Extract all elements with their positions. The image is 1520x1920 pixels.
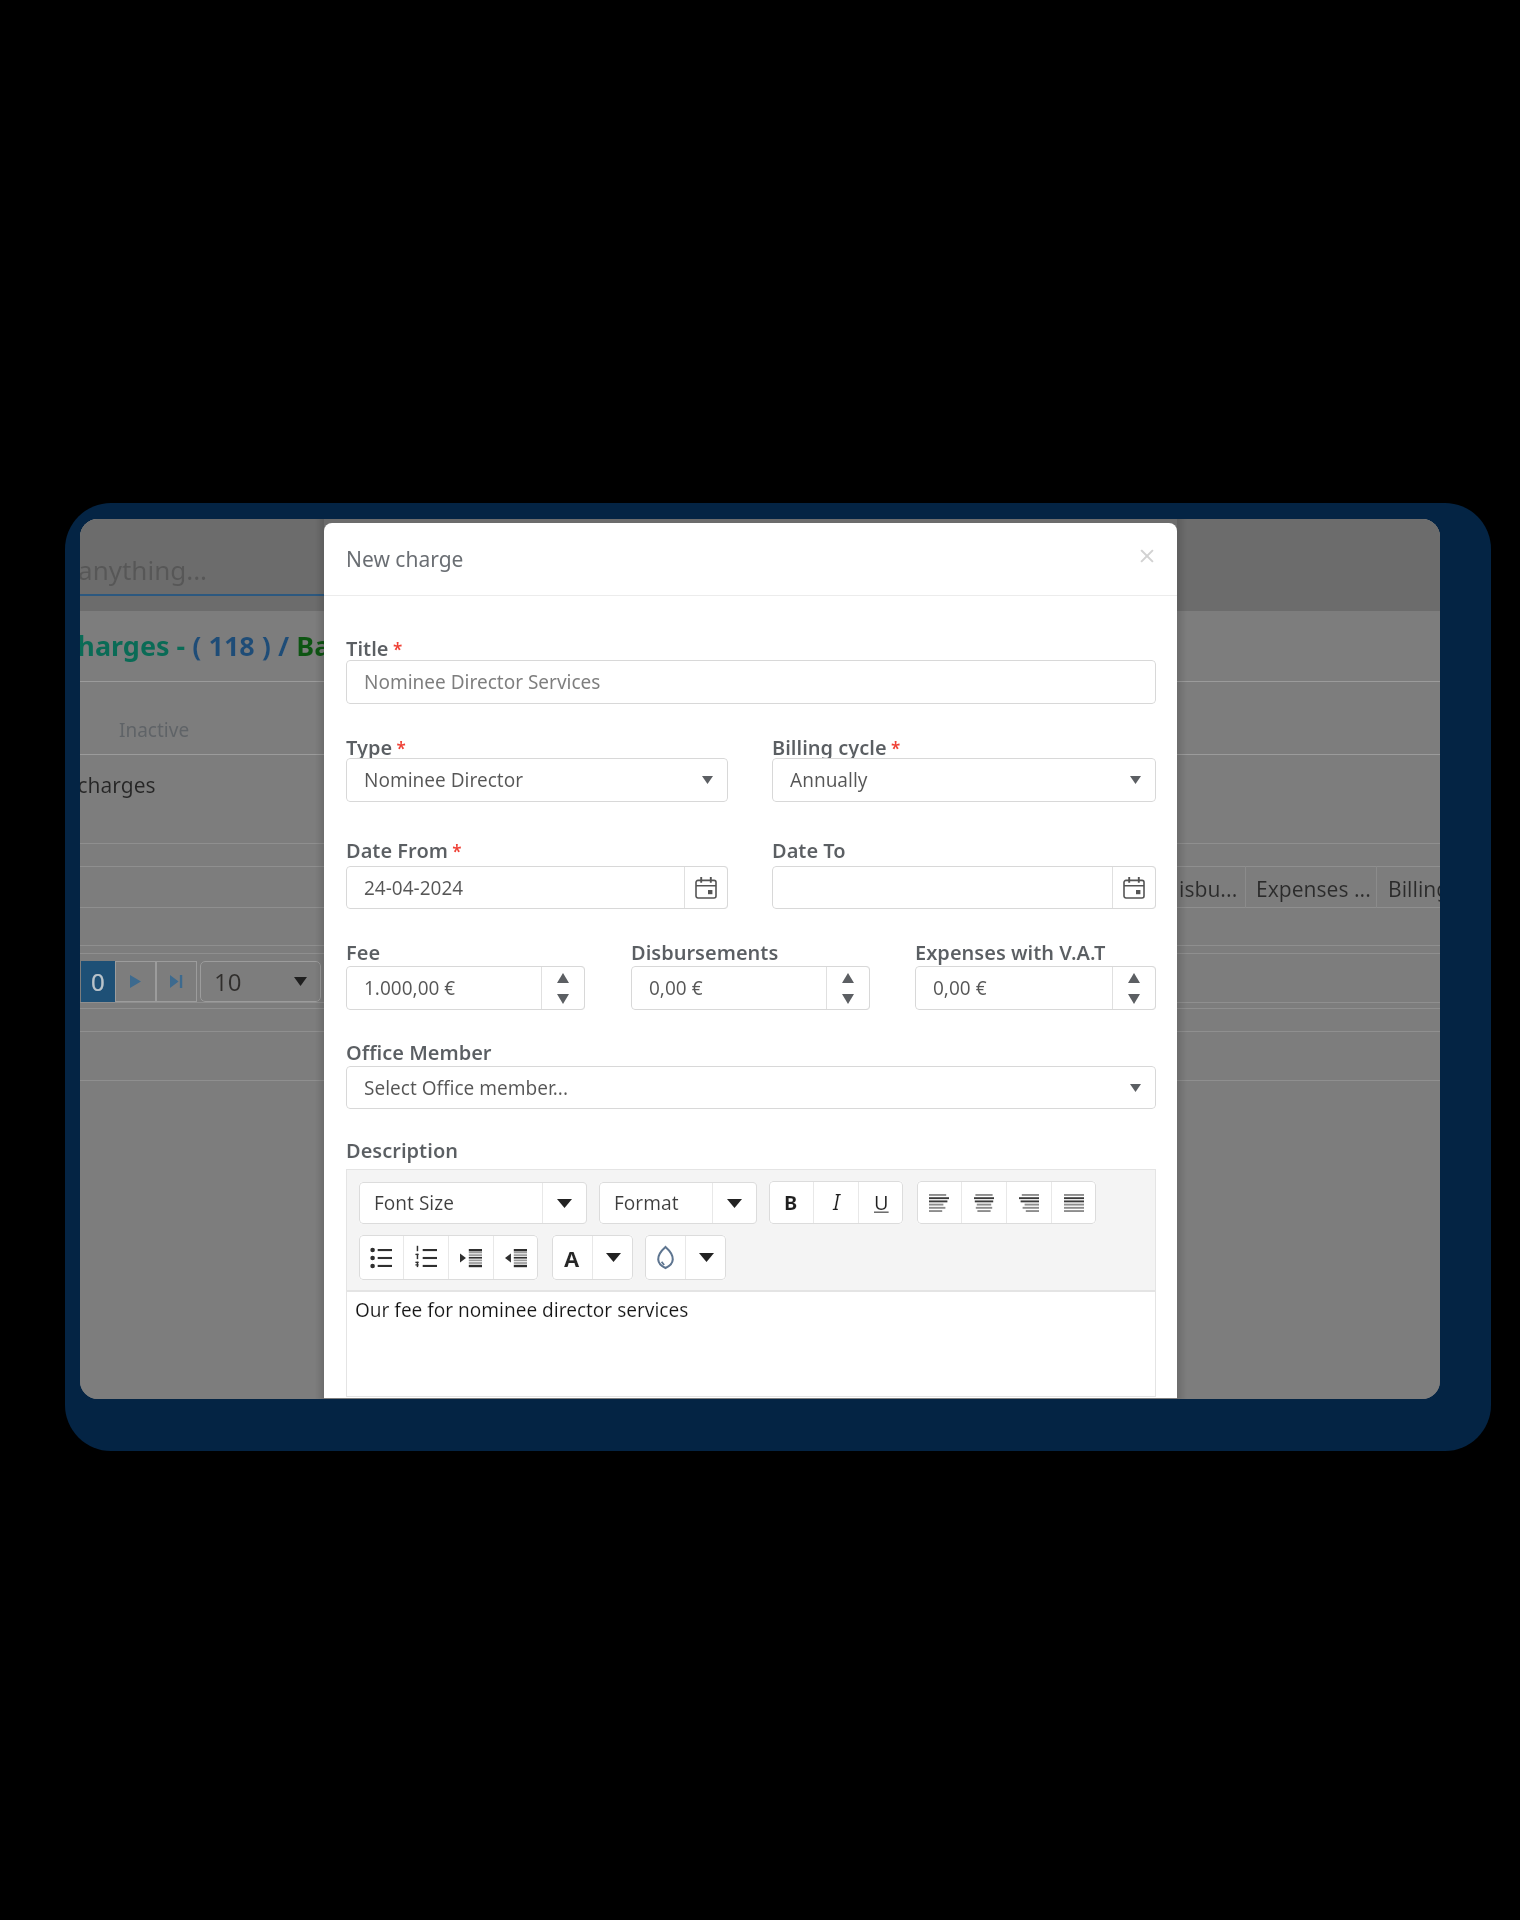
staticText: Inactive — [119, 717, 190, 743]
staticText: 24-04-2024 — [364, 875, 464, 901]
staticText: A — [564, 1243, 580, 1273]
button[interactable]: Align left — [917, 1181, 961, 1224]
button[interactable]: Decrease indent — [494, 1235, 538, 1280]
button[interactable]: Increment — [836, 970, 860, 986]
staticText: Title * — [346, 635, 403, 662]
staticText: Annually — [790, 767, 868, 793]
button[interactable]: Bold — [769, 1181, 813, 1224]
button[interactable]: Increment — [551, 970, 575, 986]
button[interactable]: 0,00 € — [915, 966, 1112, 1010]
staticText: isbu... — [1179, 875, 1238, 904]
staticText: Date From * — [346, 837, 462, 864]
staticText: U — [874, 1189, 889, 1216]
button[interactable]: Page 0 — [81, 961, 115, 1002]
staticText: Billing — [1388, 875, 1440, 904]
button[interactable]: Format — [599, 1182, 757, 1224]
staticText: I — [833, 1188, 840, 1217]
staticText: Active charges — [80, 771, 156, 800]
staticText: Disbursements — [631, 939, 779, 966]
button[interactable]: 10 — [200, 961, 321, 1002]
button[interactable]: Underline — [859, 1181, 903, 1224]
staticText: 0 — [91, 965, 105, 998]
button[interactable]: Nominee Director — [346, 758, 728, 802]
button[interactable]: Date From — [346, 866, 684, 909]
staticText: Our fee for nominee director services — [355, 1297, 689, 1323]
button[interactable]: Text colour — [552, 1235, 592, 1280]
button[interactable]: Text colour options — [593, 1235, 633, 1280]
button[interactable]: Align centre — [962, 1181, 1006, 1224]
button[interactable]: 1.000,00 € — [346, 966, 541, 1010]
staticText: Nominee Director — [364, 767, 523, 793]
button[interactable]: Justify — [1052, 1181, 1096, 1224]
button[interactable]: Highlight colour — [645, 1235, 685, 1280]
button[interactable]: Bulleted list — [359, 1235, 403, 1280]
staticText: 0,00 € — [649, 975, 703, 1001]
button[interactable]: Choose date — [684, 866, 728, 909]
staticText: Billing cycle * — [772, 734, 901, 761]
staticText: Nominee Director Services — [364, 669, 601, 695]
button[interactable]: Increase indent — [449, 1235, 493, 1280]
button[interactable]: Increment — [1122, 970, 1146, 986]
staticText: New charge — [346, 545, 464, 574]
staticText: Description — [346, 1137, 458, 1164]
button[interactable]: Select Office member... — [346, 1066, 1156, 1109]
button[interactable]: Decrement — [836, 991, 860, 1007]
staticText: Date To — [772, 837, 846, 864]
staticText: Search anything... — [80, 552, 208, 587]
button[interactable]: 0,00 € — [631, 966, 826, 1010]
staticText: Fee — [346, 939, 381, 966]
staticText: Charges - ( 118 ) / Bank charges — [80, 627, 478, 664]
button[interactable]: Next page — [115, 961, 156, 1002]
staticText: 1.000,00 € — [364, 975, 456, 1001]
staticText: Type * — [346, 734, 406, 761]
button[interactable]: Numbered list — [404, 1235, 448, 1280]
staticText: Expenses with V.A.T — [915, 939, 1106, 966]
button[interactable]: Choose date — [1112, 866, 1156, 909]
staticText: 0,00 € — [933, 975, 987, 1001]
button[interactable]: Last page — [156, 961, 197, 1002]
button[interactable]: Annually — [772, 758, 1156, 802]
button[interactable]: Font Size — [359, 1182, 587, 1224]
button[interactable]: Highlight options — [686, 1235, 726, 1280]
button[interactable]: Align right — [1007, 1181, 1051, 1224]
button[interactable]: Decrement — [1122, 991, 1146, 1007]
staticText: Expenses ... — [1256, 875, 1371, 904]
staticText: Office Member — [346, 1039, 492, 1066]
button[interactable]: Close — [1129, 538, 1165, 574]
staticText: Select Office member... — [364, 1075, 569, 1101]
button[interactable]: Italic — [814, 1181, 858, 1224]
button[interactable]: Nominee Director Services — [346, 660, 1156, 704]
staticText: 10 — [214, 965, 242, 998]
button[interactable]: Decrement — [551, 991, 575, 1007]
staticText: Format — [614, 1190, 679, 1216]
staticText: B — [784, 1189, 798, 1216]
staticText: Font Size — [374, 1190, 454, 1216]
button[interactable]: Date To — [772, 866, 1112, 909]
